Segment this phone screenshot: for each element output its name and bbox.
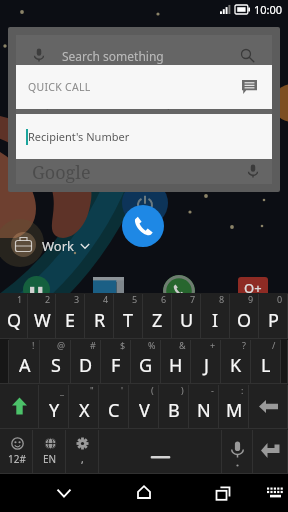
button[interactable]: @ <box>40 339 71 384</box>
staticText: + <box>210 339 216 351</box>
button[interactable]: 9 <box>230 293 259 339</box>
staticText: H <box>169 353 183 378</box>
staticText: : <box>241 384 244 396</box>
button[interactable]: 2 <box>28 293 56 339</box>
staticText: 10:00 <box>254 2 283 17</box>
staticText: L <box>261 353 271 378</box>
staticText: B <box>168 398 180 423</box>
button[interactable]: 4 <box>85 293 114 339</box>
button[interactable]: Voice input <box>222 429 253 474</box>
button[interactable]: ( <box>129 384 159 429</box>
staticText: 4 <box>103 293 109 305</box>
button[interactable] <box>0 339 9 384</box>
staticText: QUICK CALL <box>42 98 97 110</box>
button[interactable]: Quick message <box>238 76 260 98</box>
button[interactable]: : <box>219 384 249 429</box>
button[interactable]: Recents <box>201 474 245 512</box>
button[interactable]: Enter <box>253 429 288 474</box>
button[interactable]: ? <box>221 339 251 384</box>
button[interactable] <box>93 277 124 298</box>
button[interactable]: Space <box>99 429 222 474</box>
button[interactable]: 1 <box>0 293 28 339</box>
button[interactable]: 6 <box>143 293 172 339</box>
staticText: Work <box>42 237 75 255</box>
staticText: V <box>139 398 150 423</box>
staticText: $ <box>120 339 126 351</box>
button[interactable]: Settings <box>66 429 99 474</box>
staticText: 6 <box>161 293 167 305</box>
staticText: 2 <box>45 293 51 305</box>
button[interactable]: Recipient's Number <box>16 114 272 159</box>
button[interactable]: Back <box>42 474 86 512</box>
staticText: U <box>180 308 194 333</box>
staticText: 1 <box>17 293 23 305</box>
button[interactable]: Q+ <box>238 277 268 298</box>
staticText: 5 <box>132 293 138 305</box>
button[interactable]: _ <box>39 384 69 429</box>
button[interactable]: 0 <box>259 293 288 339</box>
staticText: @ <box>57 339 66 351</box>
button[interactable]: 8 <box>201 293 230 339</box>
staticText: K <box>230 353 242 378</box>
staticText: ' <box>121 384 124 396</box>
staticText: S <box>51 353 61 378</box>
staticText: J <box>204 353 209 378</box>
staticText: ? <box>242 339 246 351</box>
staticText: & <box>179 339 186 351</box>
button[interactable]: QUICK CALL <box>16 65 272 109</box>
button[interactable]: Home <box>122 474 166 512</box>
staticText: 9 <box>248 293 254 305</box>
staticText: Search something <box>62 48 164 64</box>
staticText: 7 <box>190 293 196 305</box>
button[interactable]: Symbols <box>0 429 33 474</box>
staticText: N <box>197 398 211 423</box>
staticText: _ <box>60 384 64 396</box>
button[interactable]: Language <box>33 429 66 474</box>
button[interactable]: ) <box>159 384 189 429</box>
staticText: Y <box>49 398 60 423</box>
staticText: C <box>108 398 120 423</box>
button[interactable]: - <box>189 384 219 429</box>
staticText: / <box>272 339 276 351</box>
button[interactable]: " <box>69 384 99 429</box>
staticText: 8 <box>219 293 225 305</box>
button[interactable] <box>281 339 288 384</box>
button[interactable]: / <box>251 339 281 384</box>
button[interactable]: ! <box>9 339 40 384</box>
button[interactable]: Shift <box>0 384 39 429</box>
staticText: Q <box>7 308 22 333</box>
staticText: 3 <box>74 293 80 305</box>
staticText: - <box>211 384 214 396</box>
staticText: E <box>65 308 76 333</box>
staticText: 12# <box>8 452 26 466</box>
staticText: M <box>226 398 243 423</box>
staticText: ( <box>151 384 154 396</box>
staticText: # <box>90 339 96 351</box>
button[interactable]: % <box>131 339 161 384</box>
staticText: ! <box>32 339 35 351</box>
button[interactable]: & <box>161 339 191 384</box>
button[interactable]: # <box>71 339 101 384</box>
staticText: % <box>148 339 156 351</box>
staticText: Google <box>32 160 91 185</box>
button[interactable]: Backspace <box>249 384 288 429</box>
button[interactable]: + <box>191 339 221 384</box>
button[interactable]: 3 <box>56 293 85 339</box>
button[interactable]: Power toggle <box>122 180 168 226</box>
button[interactable]: ' <box>99 384 129 429</box>
staticText: G <box>139 353 153 378</box>
staticText: A <box>19 353 31 378</box>
staticText: R <box>94 308 106 333</box>
staticText: Q+ <box>244 279 262 297</box>
staticText: QUICK MESSAGE <box>163 98 238 110</box>
button[interactable]: 5 <box>114 293 143 339</box>
staticText: " <box>90 384 94 396</box>
button[interactable] <box>23 276 50 303</box>
staticText: ) <box>181 384 184 396</box>
button[interactable]: Phone <box>122 205 164 247</box>
button[interactable] <box>163 275 195 307</box>
button[interactable]: 7 <box>172 293 201 339</box>
staticText: W <box>34 308 51 333</box>
button[interactable]: Keyboard <box>253 474 288 512</box>
button[interactable]: $ <box>101 339 131 384</box>
